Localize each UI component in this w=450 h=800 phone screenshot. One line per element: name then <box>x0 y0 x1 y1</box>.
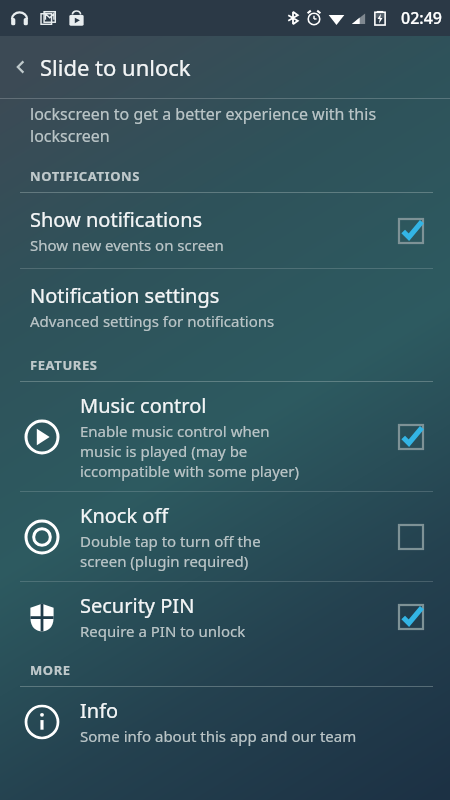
staticText: Music control <box>80 392 207 419</box>
staticText: lockscreen to get a better experience wi… <box>30 103 377 125</box>
button[interactable]: Checked <box>394 420 428 454</box>
staticText: Security PIN <box>80 592 195 619</box>
staticText: lockscreen <box>30 125 110 147</box>
staticText: Enable music control when <box>80 421 270 441</box>
staticText: Require a PIN to unlock <box>80 621 246 641</box>
staticText: NOTIFICATIONS <box>30 167 141 185</box>
staticText: Slide to unlock <box>40 52 191 82</box>
staticText: Knock off <box>80 502 169 529</box>
button[interactable]: Unchecked <box>394 520 428 554</box>
button[interactable]: Checked <box>394 600 428 634</box>
button[interactable]: Back <box>0 36 450 98</box>
staticText: 02:49 <box>401 7 442 29</box>
button[interactable]: Show notifications <box>0 193 450 268</box>
staticText: music is played (may be <box>80 441 248 461</box>
button[interactable]: Info <box>0 687 450 756</box>
staticText: MORE <box>30 661 71 679</box>
button[interactable]: Knock off <box>0 492 450 581</box>
staticText: Some info about this app and our team <box>80 726 357 746</box>
staticText: Show notifications <box>30 206 203 233</box>
staticText: Advanced settings for notifications <box>30 311 275 331</box>
staticText: Info <box>80 697 119 724</box>
button[interactable]: Notification settings <box>0 269 450 344</box>
button[interactable]: Security PIN <box>0 582 450 651</box>
staticText: iccompatible with some player) <box>80 461 299 481</box>
button[interactable]: Music control <box>0 382 450 491</box>
other: Back <box>11 57 31 77</box>
staticText: Double tap to turn off the <box>80 531 261 551</box>
staticText: FEATURES <box>30 356 98 374</box>
button[interactable]: Checked <box>394 214 428 248</box>
staticText: Show new events on screen <box>30 235 224 255</box>
staticText: Notification settings <box>30 282 220 309</box>
staticText: screen (plugin required) <box>80 551 249 571</box>
